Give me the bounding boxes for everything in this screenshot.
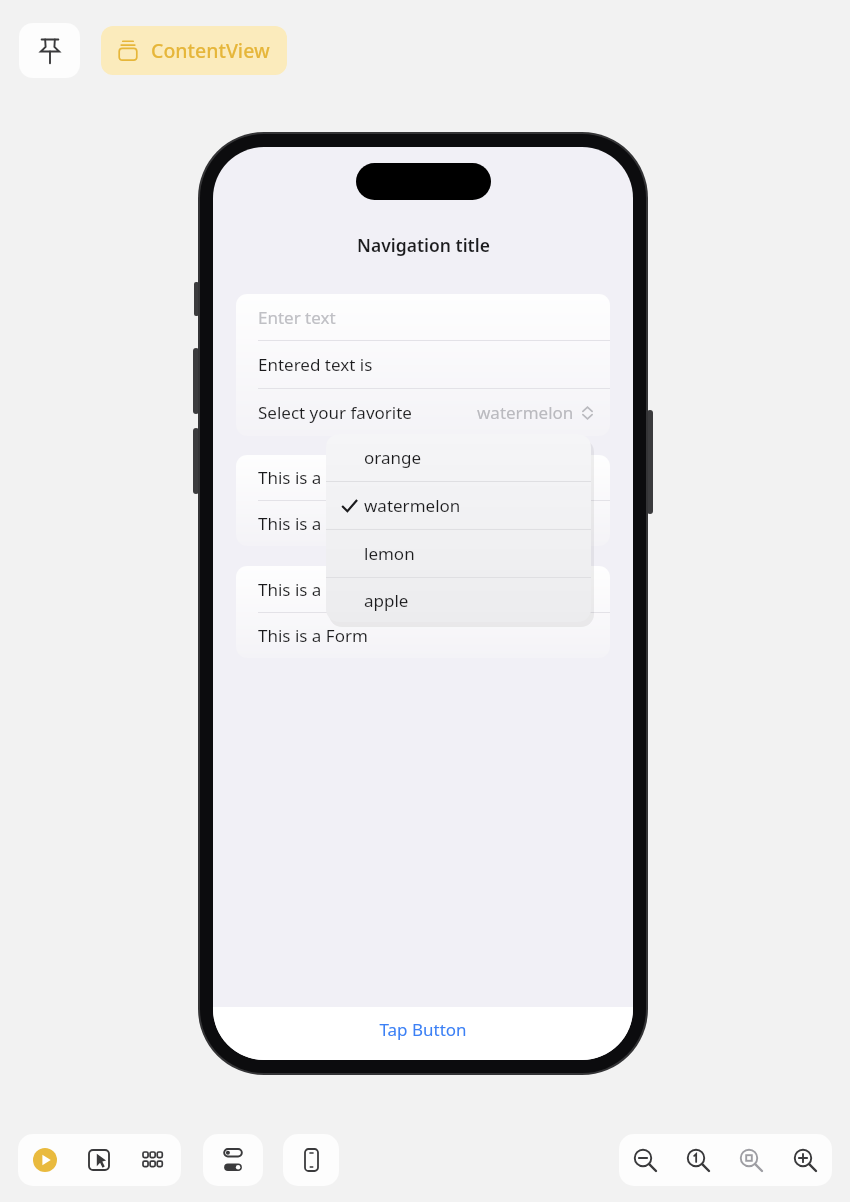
button[interactable]: Select — [72, 1134, 126, 1186]
button[interactable]: Zoom 100 percent — [672, 1134, 725, 1186]
button[interactable]: apple — [326, 578, 591, 622]
staticText: orange — [364, 446, 422, 469]
staticText: apple — [364, 589, 409, 612]
staticText: Navigation title — [357, 233, 490, 257]
button[interactable]: Select your favorite — [236, 389, 610, 436]
button[interactable]: Zoom to fit — [725, 1134, 778, 1186]
staticText: This is a Form in Section 2 — [258, 578, 465, 601]
button[interactable]: Enter text — [236, 294, 610, 340]
button[interactable]: Tap Button — [213, 1007, 633, 1060]
staticText: This is a Form — [258, 624, 368, 647]
button[interactable]: ContentView — [101, 26, 287, 75]
button[interactable]: Preview settings — [203, 1134, 263, 1186]
staticText: watermelon — [364, 494, 461, 517]
button[interactable]: Entered text is — [236, 341, 610, 388]
button[interactable]: Play preview — [18, 1134, 72, 1186]
button[interactable]: Zoom out — [619, 1134, 672, 1186]
staticText: watermelon — [477, 401, 574, 424]
button[interactable]: Zoom in — [778, 1134, 832, 1186]
button[interactable]: This is a Form in Section 2 — [236, 566, 610, 612]
button[interactable]: lemon — [326, 530, 591, 577]
button[interactable]: Device — [283, 1134, 339, 1186]
staticText: Entered text is — [258, 353, 373, 376]
button[interactable]: orange — [326, 434, 591, 481]
button[interactable]: This is a Form — [236, 455, 610, 500]
button[interactable]: watermelon — [326, 482, 591, 529]
button[interactable]: This is a Form — [236, 501, 610, 546]
staticText: ContentView — [151, 37, 270, 64]
button[interactable]: Variants — [126, 1134, 181, 1186]
staticText: Tap Button — [379, 1018, 467, 1041]
staticText: This is a Form — [258, 512, 368, 535]
button[interactable]: This is a Form — [236, 613, 610, 658]
staticText: Enter text — [258, 306, 336, 329]
staticText: This is a Form — [258, 466, 368, 489]
staticText: lemon — [364, 542, 415, 565]
staticText: Select your favorite — [258, 401, 412, 424]
button[interactable]: Pin preview — [19, 23, 80, 78]
